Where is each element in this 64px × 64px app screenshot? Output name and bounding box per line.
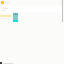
button[interactable] xyxy=(13,13,18,22)
button[interactable]: Menu xyxy=(1,1,4,4)
button[interactable] xyxy=(1,6,63,12)
button[interactable] xyxy=(0,15,64,17)
